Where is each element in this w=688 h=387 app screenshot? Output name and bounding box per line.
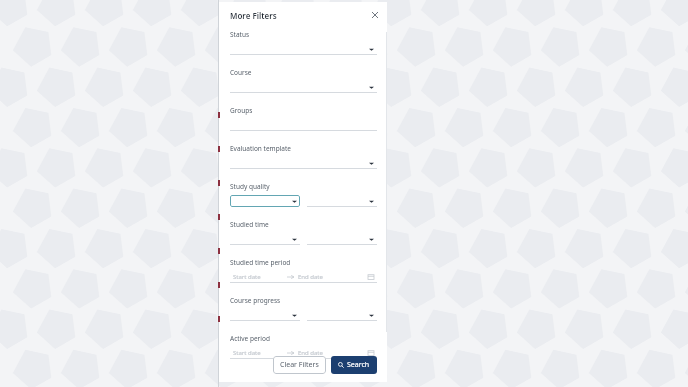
button[interactable]: Study quality operator [230,195,300,207]
staticText: Start date [233,349,261,357]
staticText: End date [298,349,323,357]
staticText: Active period [230,334,270,343]
button[interactable]: Search [331,356,377,374]
staticText: Course progress [230,296,281,305]
button[interactable]: Select date range [230,347,377,359]
staticText: Evaluation template [230,144,291,153]
button[interactable]: Status [230,43,377,55]
staticText: Start date [233,273,261,281]
button[interactable]: Course progress value [307,309,377,321]
staticText: Status [230,30,250,39]
staticText: End date [298,273,323,281]
button[interactable]: Clear Filters [273,356,326,374]
staticText: Studied time [230,220,269,229]
button[interactable]: Study quality value [307,195,377,207]
staticText: Clear Filters [280,360,319,370]
staticText: More Filters [230,10,277,21]
button[interactable]: Studied time value [307,233,377,245]
staticText: Study quality [230,182,270,191]
button[interactable]: Select date range [230,271,377,283]
button[interactable]: Course progress operator [230,309,300,321]
button[interactable]: Close [368,8,382,22]
staticText: Groups [230,106,253,115]
button[interactable]: Course [230,81,377,93]
staticText: Course [230,68,252,77]
button[interactable]: Studied time operator [230,233,300,245]
staticText: Search [347,360,370,370]
staticText: Studied time period [230,258,291,267]
button[interactable]: Groups [230,119,377,131]
button[interactable]: Evaluation template [230,157,377,169]
